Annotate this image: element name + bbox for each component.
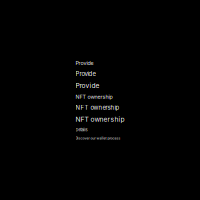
staticText: Discover our wallet process: [75, 136, 120, 140]
staticText: Provide: [75, 60, 93, 66]
staticText: Details: [75, 127, 87, 132]
staticText: NFT ownership: [75, 115, 124, 123]
staticText: Provide: [75, 70, 95, 77]
staticText: Provide: [75, 81, 99, 90]
staticText: NFT ownership: [75, 94, 112, 100]
staticText: NFT ownership: [75, 104, 119, 111]
